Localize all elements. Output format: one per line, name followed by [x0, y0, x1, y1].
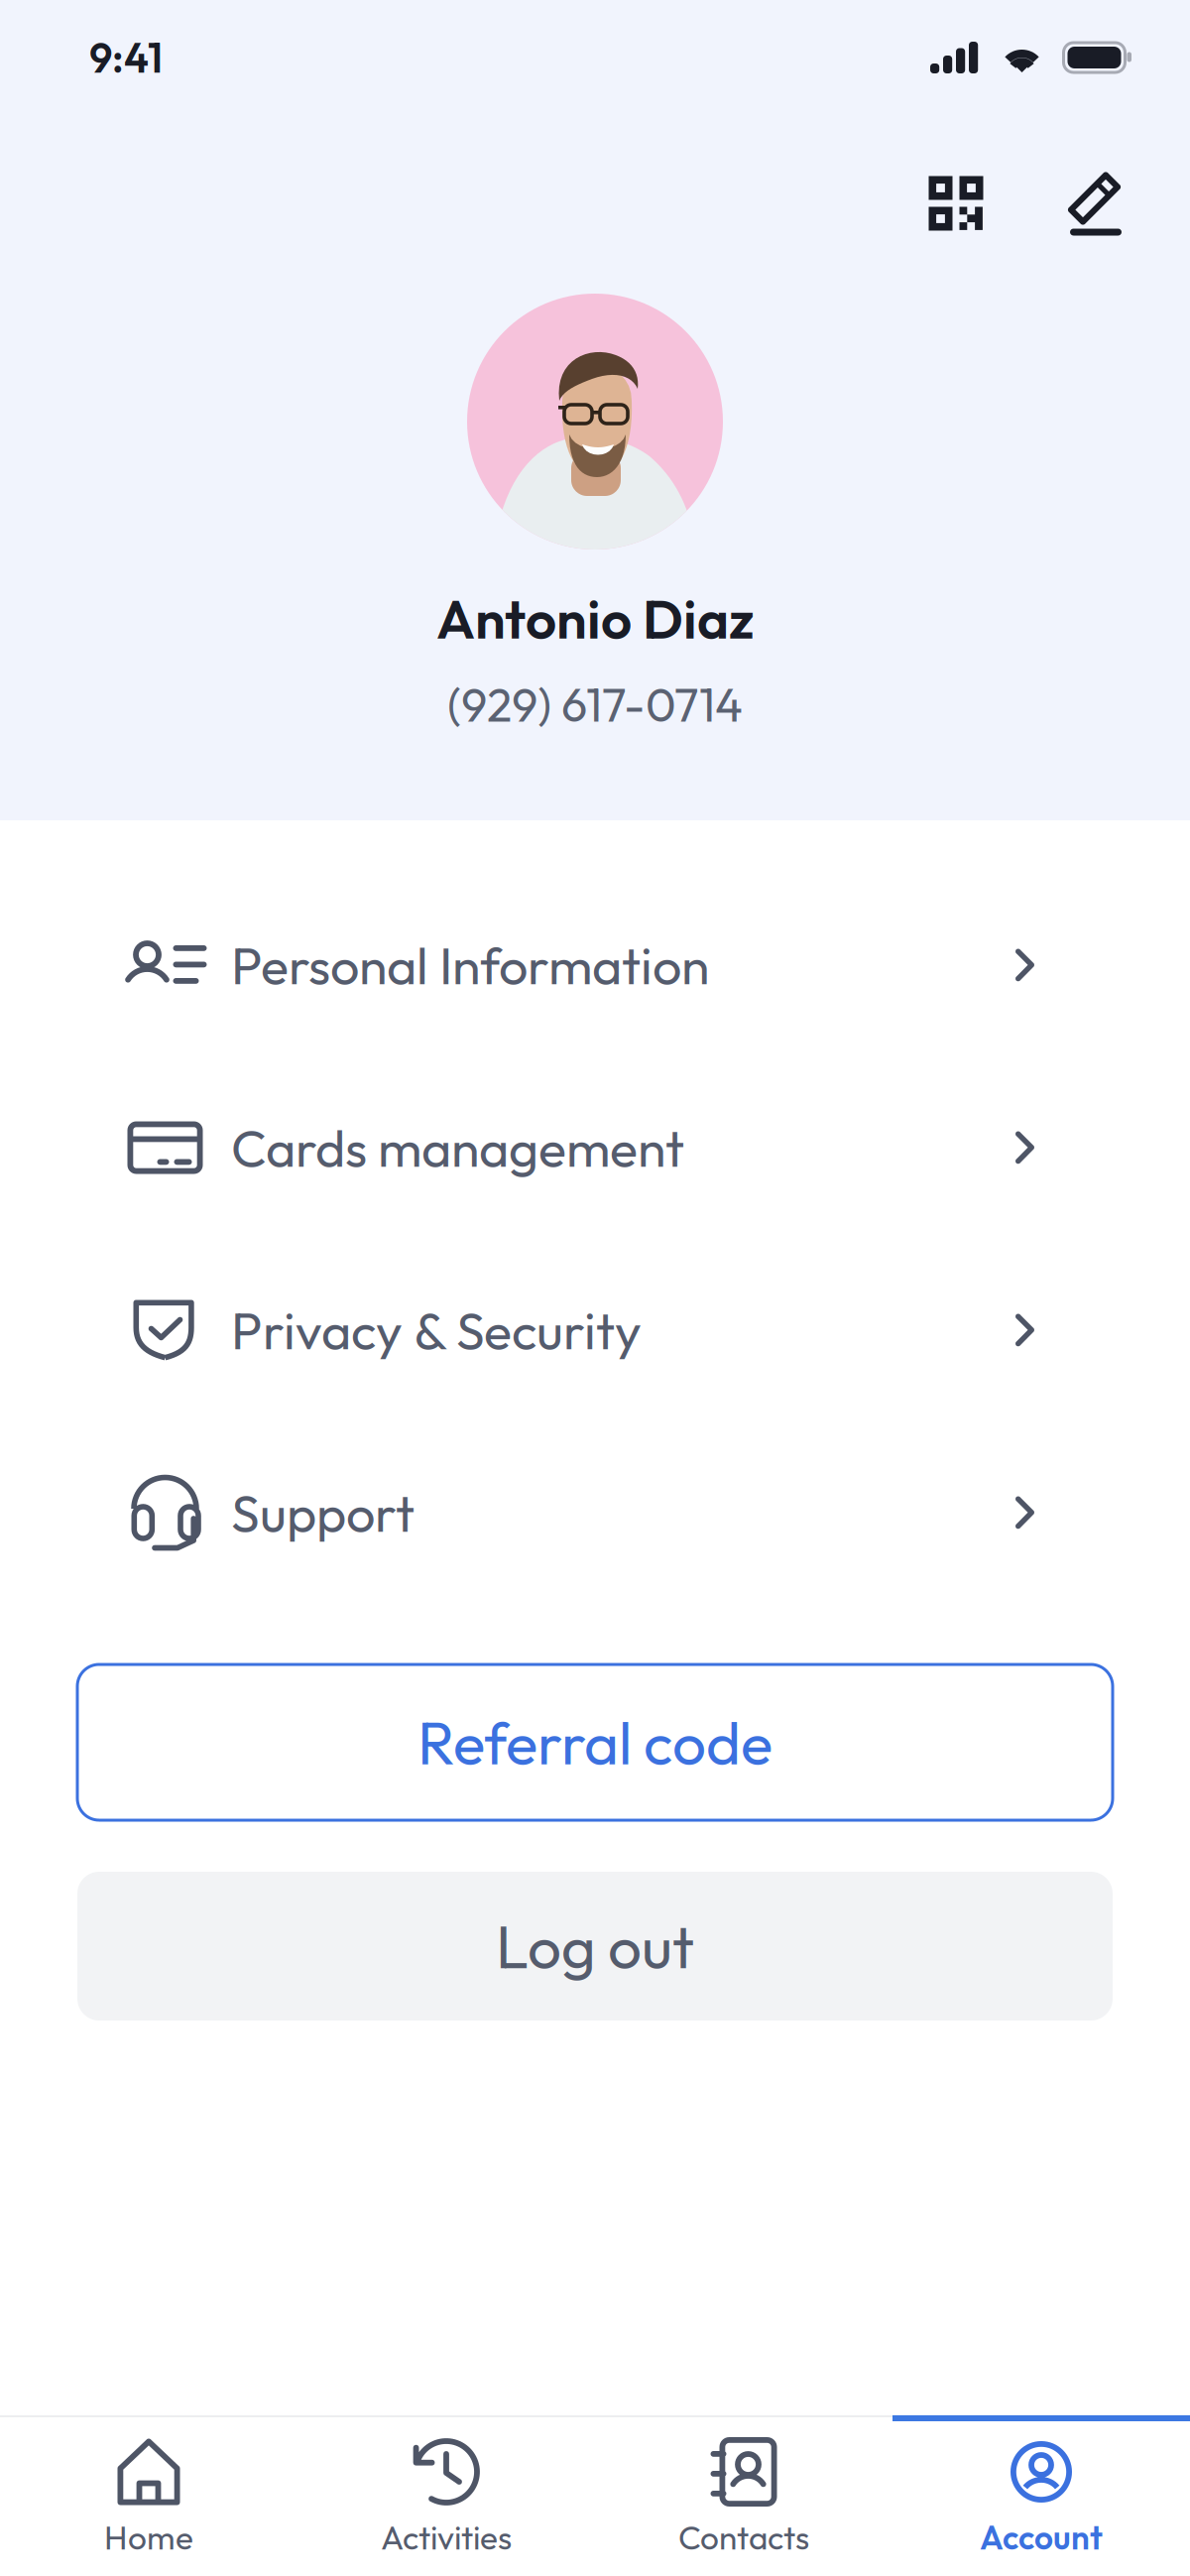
staticText: Personal Information [231, 933, 709, 998]
button[interactable]: Scan QR code [913, 161, 999, 246]
staticText: Log out [496, 1909, 694, 1984]
button[interactable]: Log out [77, 1872, 1113, 2021]
staticText: Referral code [417, 1705, 773, 1780]
button[interactable]: Cards management [0, 1056, 1190, 1239]
staticText: 9:41 [89, 32, 163, 83]
staticText: Cards management [231, 1115, 684, 1180]
button[interactable]: Activities [297, 2415, 595, 2576]
button[interactable]: Privacy & Security [0, 1239, 1190, 1421]
button[interactable]: Support [0, 1421, 1190, 1604]
button[interactable]: Account [892, 2415, 1190, 2576]
button[interactable]: Home [0, 2415, 297, 2576]
staticText: Home [104, 2516, 193, 2558]
staticText: Activities [381, 2516, 512, 2558]
button[interactable]: Referral code [77, 1664, 1113, 1820]
staticText: Contacts [678, 2516, 809, 2558]
staticText: (929) 617-0714 [447, 675, 743, 734]
staticText: Antonio Diaz [436, 584, 754, 653]
staticText: Privacy & Security [231, 1298, 642, 1363]
staticText: Account [980, 2516, 1103, 2558]
button[interactable]: Personal Information [0, 874, 1190, 1056]
staticText: Support [231, 1480, 415, 1545]
button[interactable]: Contacts [595, 2415, 892, 2576]
button[interactable]: Edit profile [1052, 161, 1137, 246]
